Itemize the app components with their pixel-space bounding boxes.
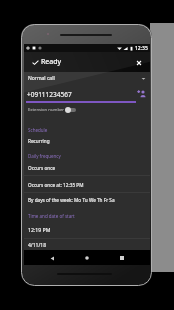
staticText: Schedule xyxy=(28,127,48,133)
button[interactable]: Occurs once xyxy=(24,163,150,173)
staticText: Occurs once xyxy=(28,165,56,171)
staticText: 4/11/18 xyxy=(28,242,47,249)
staticText: By days of the week: Mo Tu We Th Fr Sa xyxy=(28,197,115,203)
button[interactable]: Home xyxy=(80,251,94,265)
button[interactable]: Toggle extension number xyxy=(65,106,77,114)
staticText: Time and date of start xyxy=(28,213,75,219)
button[interactable]: Normal call xyxy=(24,73,150,84)
staticText: 12:19 PM xyxy=(28,226,51,233)
button[interactable]: 12:19 PM xyxy=(24,224,150,234)
staticText: Daily frequency xyxy=(28,153,61,159)
button[interactable]: Recurring xyxy=(24,136,150,146)
staticText: Normal call xyxy=(28,75,55,82)
staticText: Occurs once at: 12:35 PM xyxy=(28,182,84,188)
button[interactable]: Back xyxy=(45,251,59,265)
button[interactable]: By days of the week: Mo Tu We Th Fr Sa xyxy=(24,195,150,205)
staticText: 12:35 xyxy=(135,45,148,52)
button[interactable]: 4/11/18 xyxy=(24,240,150,250)
button[interactable]: Add contact xyxy=(137,89,147,99)
staticText: Recurring xyxy=(28,138,50,144)
staticText: Ready xyxy=(41,57,62,67)
staticText: +09111234567 xyxy=(27,90,72,99)
button[interactable]: Close xyxy=(133,57,144,68)
staticText: Extension number xyxy=(28,107,65,113)
button[interactable]: Recent apps xyxy=(115,251,129,265)
button[interactable]: Occurs once at: 12:35 PM xyxy=(24,180,150,190)
